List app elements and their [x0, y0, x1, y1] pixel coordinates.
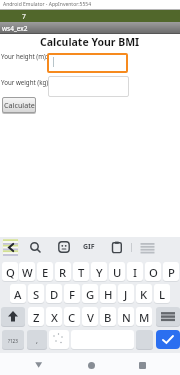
staticText: , — [36, 336, 38, 346]
staticText: U — [113, 265, 122, 280]
staticText: K — [140, 287, 148, 302]
button[interactable]: U — [109, 262, 125, 281]
staticText: B — [104, 310, 112, 325]
button[interactable]: G — [82, 284, 98, 303]
button[interactable]: S — [28, 284, 44, 303]
staticText: M — [139, 310, 150, 325]
button[interactable]: C — [64, 307, 80, 326]
staticText: A — [14, 287, 22, 302]
button[interactable]: , — [27, 330, 47, 349]
button[interactable]: Y — [91, 262, 107, 281]
staticText: Y — [96, 265, 103, 280]
staticText: GIF — [83, 242, 95, 252]
staticText: G — [86, 287, 95, 302]
button[interactable]: D — [46, 284, 62, 303]
staticText: Z — [33, 310, 40, 325]
button[interactable]: I — [127, 262, 143, 281]
staticText: Q — [6, 265, 15, 280]
button[interactable]: A — [10, 284, 26, 303]
button[interactable] — [156, 307, 180, 326]
staticText: X — [51, 310, 58, 325]
button[interactable]: X — [46, 307, 62, 326]
button[interactable] — [35, 362, 42, 368]
button[interactable] — [111, 241, 123, 253]
button[interactable] — [47, 53, 128, 73]
button[interactable]: GIF — [83, 242, 95, 252]
button[interactable]: E — [37, 262, 53, 281]
staticText: L — [159, 287, 166, 302]
staticText: P — [168, 265, 175, 280]
button[interactable]: Calculate — [2, 97, 36, 113]
staticText: Your height (m): — [1, 52, 48, 60]
staticText: H — [104, 287, 113, 302]
button[interactable]: R — [55, 262, 71, 281]
button[interactable]: F — [64, 284, 80, 303]
staticText: T — [78, 265, 85, 280]
button[interactable] — [139, 362, 146, 369]
button[interactable] — [156, 330, 180, 349]
button[interactable] — [49, 330, 69, 349]
button[interactable] — [1, 307, 25, 326]
staticText: J — [124, 287, 128, 302]
button[interactable] — [140, 243, 155, 254]
button[interactable]: ?123 — [2, 330, 24, 349]
button[interactable]: B — [100, 307, 116, 326]
staticText: 7 — [22, 12, 26, 21]
staticText: C — [68, 310, 76, 325]
staticText: S — [33, 287, 40, 302]
button[interactable]: P — [163, 262, 179, 281]
button[interactable]: J — [118, 284, 134, 303]
button[interactable]: W — [19, 262, 35, 281]
staticText: Android Emulator - AppInventor:5554 — [3, 1, 92, 8]
staticText: N — [122, 310, 131, 325]
staticText: ?123 — [8, 338, 18, 344]
button[interactable]: Z — [28, 307, 44, 326]
staticText: Your weight (kg): — [1, 78, 50, 86]
button[interactable] — [88, 362, 95, 369]
button[interactable]: V — [82, 307, 98, 326]
button[interactable]: K — [136, 284, 152, 303]
button[interactable]: T — [73, 262, 89, 281]
button[interactable]: M — [136, 307, 152, 326]
staticText: Calculate — [4, 100, 35, 110]
staticText: W — [22, 265, 33, 280]
button[interactable] — [29, 241, 42, 254]
button[interactable] — [58, 241, 70, 253]
staticText: V — [87, 310, 94, 325]
button[interactable] — [2, 239, 19, 256]
button[interactable] — [48, 76, 129, 97]
staticText: F — [69, 287, 75, 302]
staticText: D — [50, 287, 59, 302]
staticText: E — [42, 265, 49, 280]
button[interactable]: Q — [2, 262, 18, 281]
button[interactable]: N — [118, 307, 134, 326]
button[interactable]: O — [145, 262, 161, 281]
staticText: I — [133, 265, 137, 280]
staticText: R — [59, 265, 67, 280]
staticText: ws4_ex2 — [2, 24, 28, 33]
staticText: O — [149, 265, 158, 280]
button[interactable]: H — [100, 284, 116, 303]
staticText: Calculate Your BMI — [40, 35, 140, 49]
button[interactable]: L — [154, 284, 170, 303]
